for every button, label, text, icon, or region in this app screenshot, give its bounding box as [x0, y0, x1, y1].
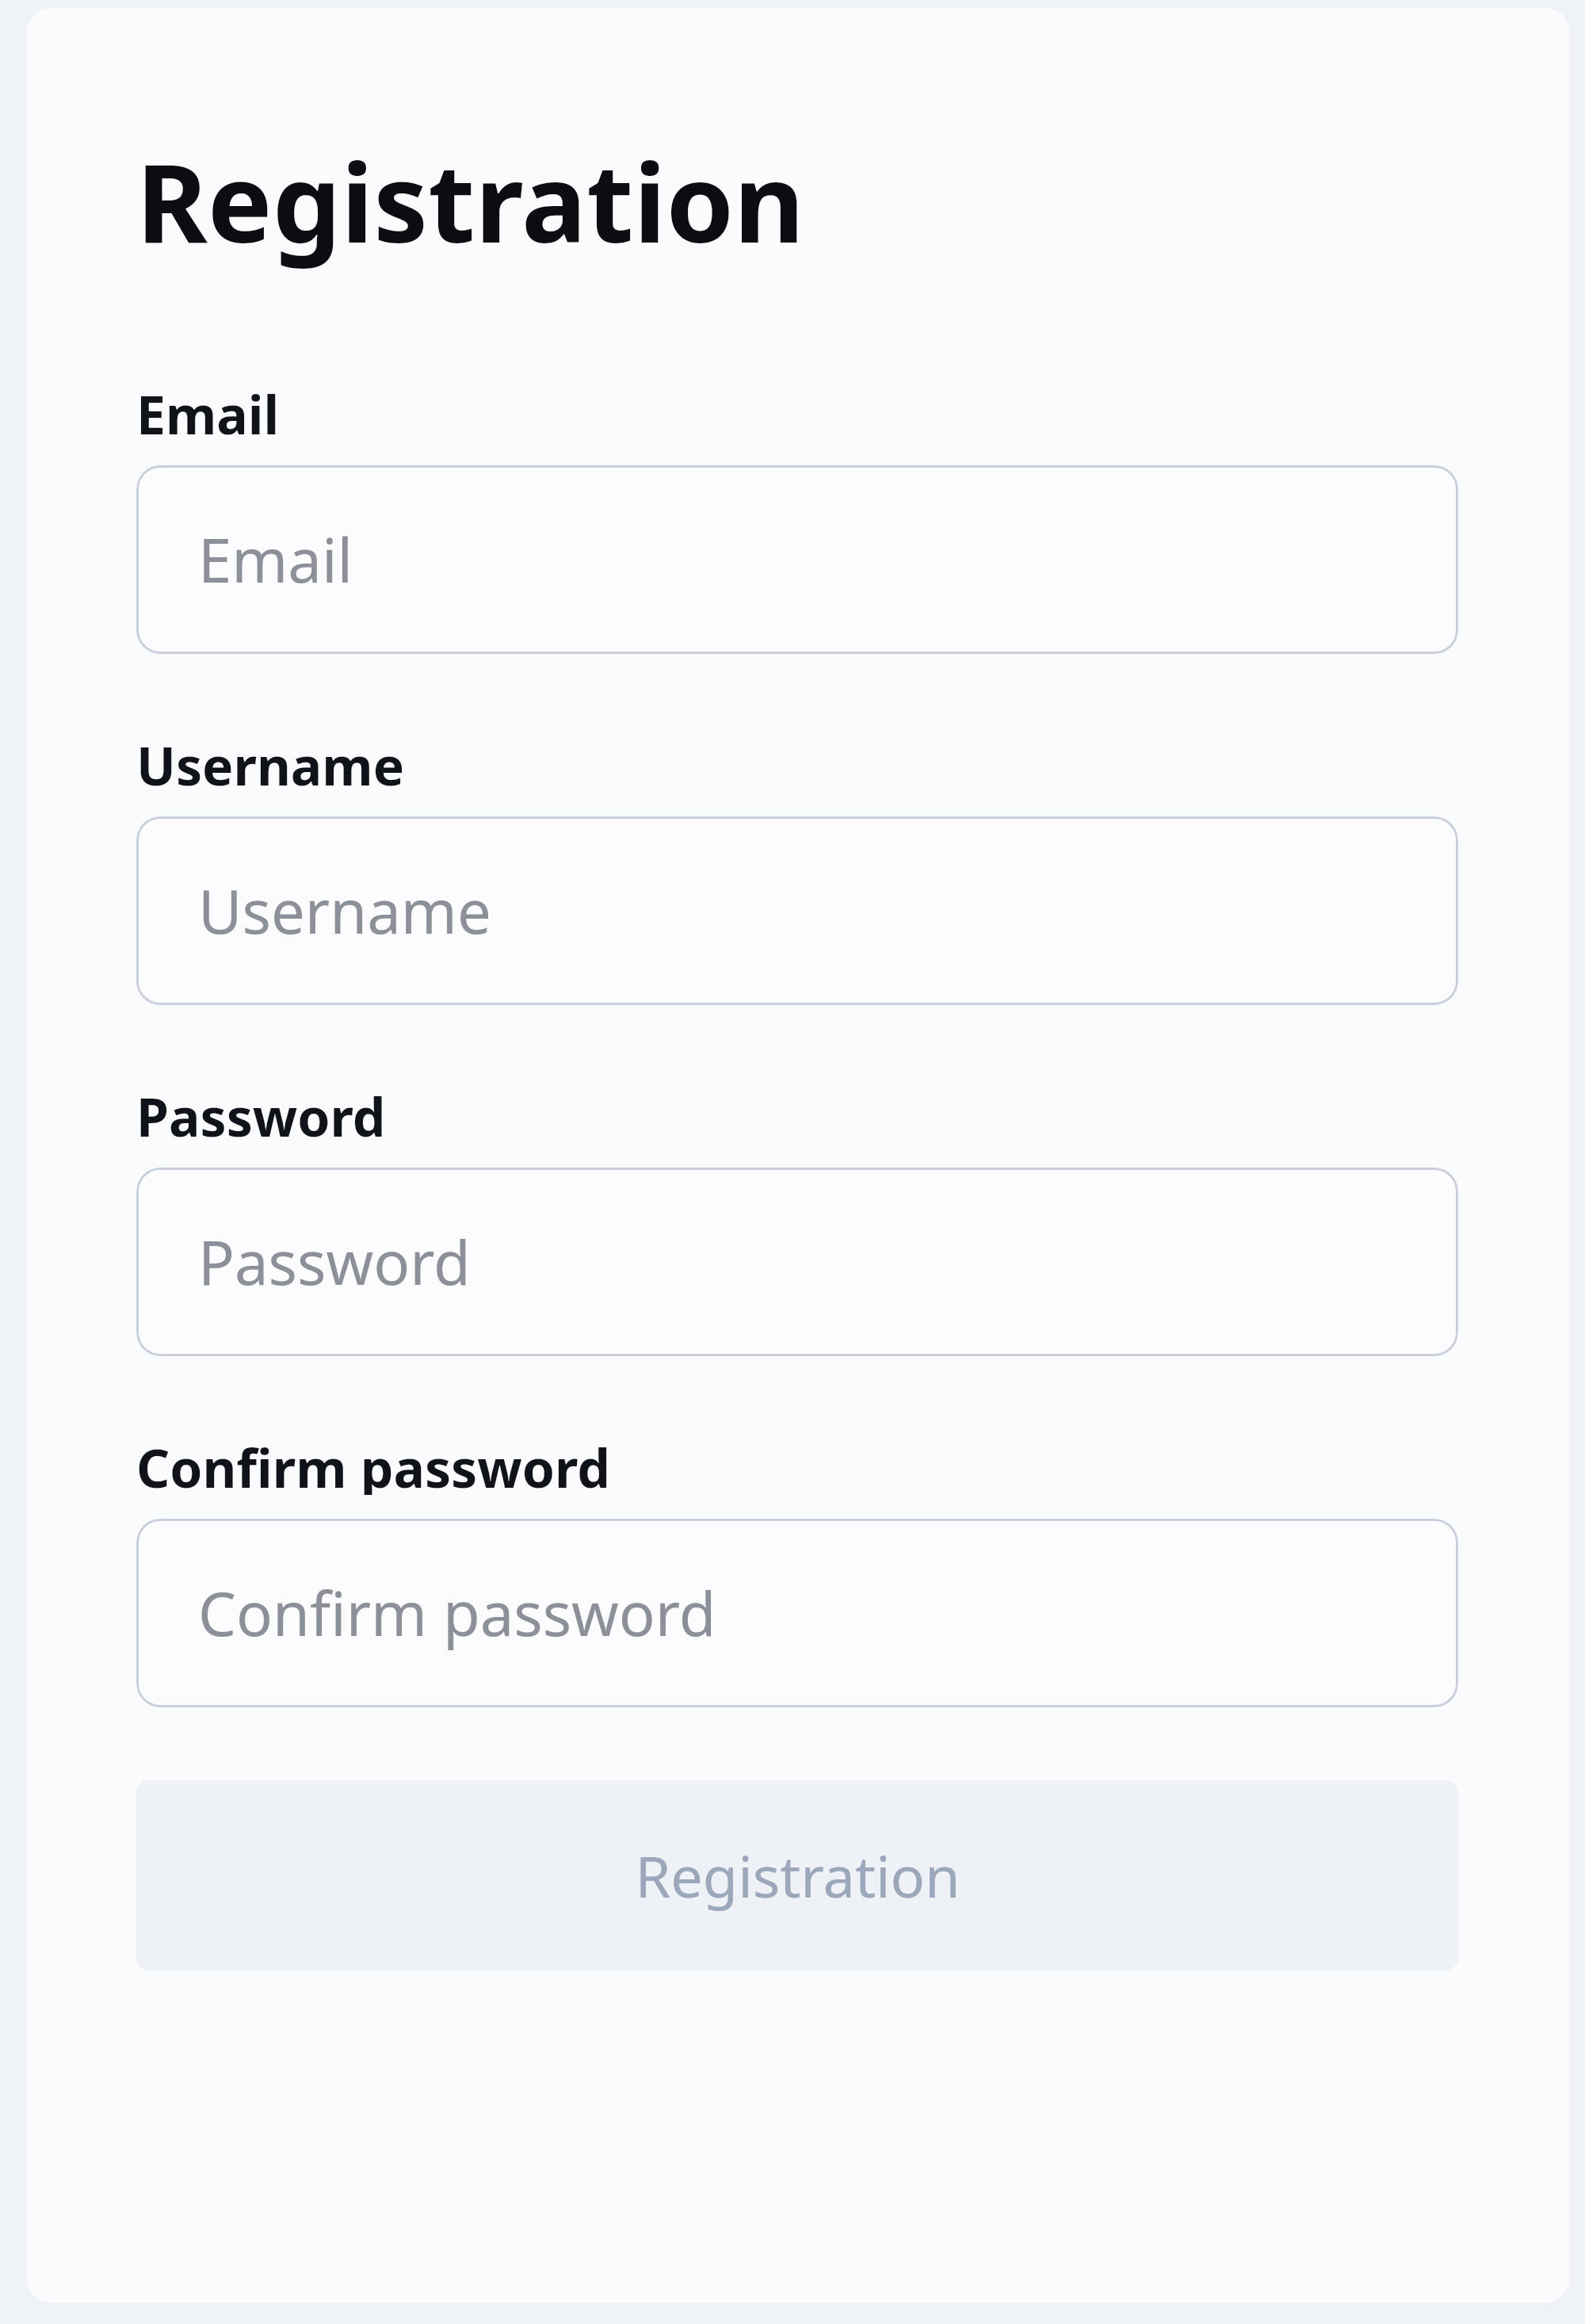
staticText: Password	[136, 1080, 386, 1144]
staticText: Password	[198, 1221, 471, 1303]
staticText: Username	[136, 729, 405, 793]
staticText: Email	[198, 518, 353, 601]
button[interactable]: Registration	[136, 1780, 1458, 1970]
staticText: Username	[198, 870, 491, 952]
staticText: Confirm password	[198, 1572, 716, 1654]
staticText: Confirm password	[136, 1431, 610, 1495]
button[interactable]: Confirm password	[136, 1519, 1458, 1707]
button[interactable]: Password	[136, 1168, 1458, 1356]
staticText: Registration	[635, 1837, 961, 1914]
button[interactable]: Email	[136, 465, 1458, 654]
staticText: Registration	[136, 127, 805, 275]
staticText: Email	[136, 378, 280, 441]
button[interactable]: Username	[136, 816, 1458, 1005]
